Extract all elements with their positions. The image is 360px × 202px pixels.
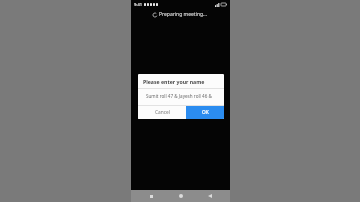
staticText: Please enter your name [143,78,205,85]
button[interactable]: Recent apps [142,190,160,202]
button[interactable]: Back [201,190,219,202]
staticText: OK [202,109,209,116]
button[interactable]: Home [172,190,190,202]
button[interactable]: OK [186,106,224,119]
button[interactable]: Sumit roll 47 & Jayesh roll 46 & [138,89,224,105]
staticText: 9:41 [134,2,142,7]
staticText: Preparing meeting… [159,11,208,18]
button[interactable]: Cancel [138,106,186,119]
staticText: Cancel [155,109,170,116]
staticText: Sumit roll 47 & Jayesh roll 46 & [146,93,212,99]
